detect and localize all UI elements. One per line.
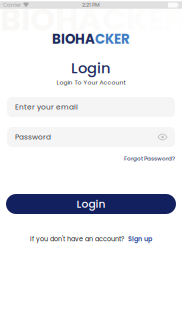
staticText: Login (71, 58, 111, 78)
button[interactable]: Enter your email (7, 97, 175, 117)
staticText: 2:21 PM (82, 1, 100, 9)
button[interactable]: Login (6, 194, 176, 214)
staticText: Login To Your Account (56, 78, 125, 87)
staticText: Forgot Password? (124, 154, 175, 162)
staticText: If you don't have an account? (30, 234, 124, 243)
button[interactable]: Forgot Password? (124, 154, 175, 162)
staticText: Enter your email (15, 102, 78, 112)
button[interactable]: Password (7, 127, 175, 147)
staticText: Password (15, 132, 51, 142)
staticText: BIOHACKER (0, 0, 182, 42)
staticText: BIOHA (52, 30, 95, 48)
staticText: Carrier (3, 1, 21, 9)
button[interactable]: Sign up (128, 234, 152, 243)
staticText: Sign up (128, 234, 152, 243)
staticText: Login (76, 196, 105, 211)
staticText: CKER (95, 30, 130, 48)
